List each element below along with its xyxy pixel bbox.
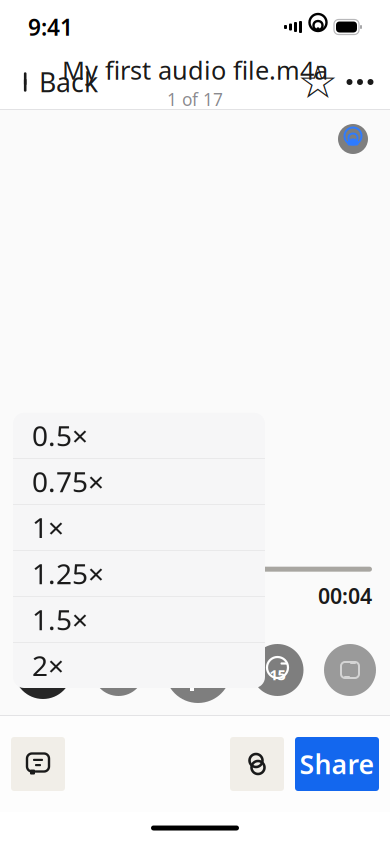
button[interactable]: 1× <box>14 641 72 699</box>
button[interactable]: 2× <box>13 643 265 688</box>
button[interactable]: Repeat <box>324 644 376 696</box>
staticText: 9:41 <box>28 12 73 42</box>
button[interactable]: Play <box>165 637 231 703</box>
button[interactable]: 1.25× <box>13 551 265 597</box>
staticText: 1× <box>32 509 64 546</box>
staticText: ☆ <box>297 56 338 108</box>
button[interactable]: 1.5× <box>13 597 265 643</box>
staticText: 1× <box>30 655 56 685</box>
staticText: 2× <box>32 647 64 684</box>
staticText: 1.25× <box>32 555 104 592</box>
button[interactable]: Back <box>8 56 110 108</box>
staticText: Share <box>299 746 374 782</box>
staticText: My first audio file.m4a <box>62 53 328 87</box>
button[interactable]: 1× <box>13 505 265 551</box>
staticText: 1 of 17 <box>167 88 223 111</box>
button[interactable]: Transcript <box>11 737 65 791</box>
button[interactable]: More options <box>338 62 382 102</box>
staticText: 00:04 <box>318 582 372 610</box>
staticText: 0.5× <box>32 417 88 454</box>
staticText: 1.5× <box>32 601 88 638</box>
button[interactable]: 0.75× <box>13 459 265 505</box>
staticText: 0.75× <box>32 463 104 500</box>
button[interactable]: Skip forward 15 seconds <box>251 644 303 696</box>
button[interactable]: Share <box>295 737 379 791</box>
button[interactable]: Copy link <box>230 737 284 791</box>
button[interactable]: 0.5× <box>13 413 265 459</box>
staticText: 15 <box>269 665 285 684</box>
button[interactable]: Skip back 15 seconds <box>92 644 144 696</box>
staticText: Back <box>39 64 98 100</box>
button[interactable]: Favourite <box>298 62 338 102</box>
button[interactable]: Audio output <box>338 124 368 154</box>
